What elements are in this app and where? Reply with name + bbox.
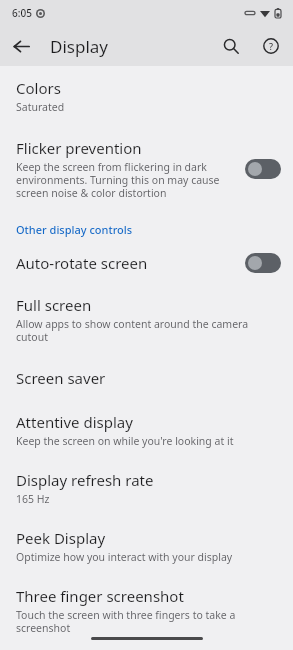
- button[interactable]: Three finger screenshot: [0, 576, 293, 647]
- button[interactable]: Help: [251, 26, 291, 66]
- staticText: Keep the screen from flickering in dark …: [16, 160, 235, 200]
- staticText: Colors: [16, 78, 61, 98]
- staticText: Optimize how you interact with your disp…: [16, 550, 233, 564]
- staticText: 165 Hz: [16, 492, 50, 506]
- staticText: Other display controls: [16, 222, 133, 237]
- button[interactable]: Toggle Auto-rotate screen: [245, 253, 281, 273]
- button[interactable]: Attentive display: [0, 402, 293, 460]
- button[interactable]: Screen saver: [0, 356, 293, 402]
- staticText: Screen saver: [16, 368, 106, 388]
- staticText: Full screen: [16, 295, 92, 315]
- staticText: 6:05: [12, 6, 32, 20]
- staticText: Touch the screen with three fingers to t…: [16, 608, 277, 635]
- staticText: Saturated: [16, 100, 65, 114]
- staticText: Display: [50, 35, 108, 58]
- button[interactable]: Full screen: [0, 285, 293, 356]
- button[interactable]: Toggle Flicker prevention: [245, 159, 281, 179]
- button[interactable]: Auto-rotate screen: [0, 243, 293, 285]
- staticText: Attentive display: [16, 412, 133, 432]
- staticText: Flicker prevention: [16, 138, 142, 158]
- staticText: Allow apps to show content around the ca…: [16, 317, 277, 344]
- staticText: Auto-rotate screen: [16, 253, 148, 273]
- button[interactable]: Display refresh rate: [0, 460, 293, 518]
- staticText: Display refresh rate: [16, 470, 154, 490]
- button[interactable]: Search: [211, 26, 251, 66]
- staticText: Keep the screen on while you're looking …: [16, 434, 234, 448]
- staticText: Three finger screenshot: [16, 586, 184, 606]
- button[interactable]: Peek Display: [0, 518, 293, 576]
- staticText: ?: [269, 40, 274, 52]
- button[interactable]: Back: [0, 26, 42, 66]
- button[interactable]: Colors: [0, 66, 293, 128]
- button[interactable]: Flicker prevention: [0, 128, 293, 212]
- staticText: Peek Display: [16, 528, 106, 548]
